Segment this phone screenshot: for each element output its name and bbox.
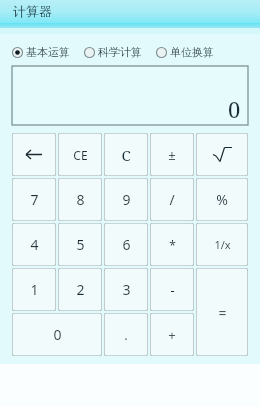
button[interactable]: ± [150,133,194,176]
staticText: 0 [53,325,62,344]
staticText: 7 [30,190,39,209]
staticText: + [168,326,176,344]
button[interactable]: 1/x [196,223,248,266]
button[interactable]: 1 [12,268,56,311]
staticText: 0 [228,94,241,124]
staticText: 6 [122,235,131,254]
staticText: / [169,190,175,209]
staticText: 4 [30,235,39,254]
button[interactable]: 6 [104,223,148,266]
button[interactable]: 3 [104,268,148,311]
button[interactable]: % [196,178,248,221]
staticText: 2 [76,280,85,299]
staticText: 1 [30,280,39,299]
staticText: CE [73,147,88,163]
button[interactable]: + [150,313,194,356]
staticText: 计算器 [13,3,52,19]
staticText: 5 [76,235,85,254]
staticText: * [169,237,176,253]
button[interactable]: * [150,223,194,266]
button[interactable]: Backspace [12,133,56,176]
button[interactable]: 5 [58,223,102,266]
button[interactable]: / [150,178,194,221]
button[interactable]: 2 [58,268,102,311]
button[interactable]: 基本运算 [12,45,70,59]
staticText: = [218,303,227,322]
staticText: 3 [122,280,131,299]
staticText: ± [168,146,176,164]
staticText: - [170,281,175,299]
button[interactable]: 9 [104,178,148,221]
staticText: 科学计算 [98,45,142,59]
button[interactable]: CE [58,133,102,176]
staticText: 单位换算 [170,45,214,59]
button[interactable]: 科学计算 [84,45,142,59]
staticText: 基本运算 [26,45,70,59]
button[interactable]: . [104,313,148,356]
button[interactable]: 7 [12,178,56,221]
button[interactable]: - [150,268,194,311]
button[interactable]: 单位换算 [156,45,214,59]
button[interactable]: 8 [58,178,102,221]
staticText: 8 [76,190,85,209]
staticText: C [121,145,131,165]
staticText: 9 [122,190,131,209]
button[interactable]: 4 [12,223,56,266]
button[interactable]: 0 [12,313,102,356]
staticText: 1/x [214,237,231,252]
button[interactable]: = [196,268,248,356]
button[interactable]: Square root [196,133,248,176]
staticText: % [216,190,228,209]
button[interactable]: C [104,133,148,176]
staticText: . [124,326,128,344]
